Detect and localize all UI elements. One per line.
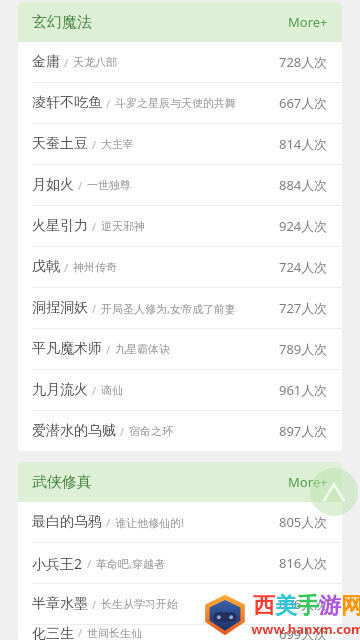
button[interactable]: 月如火: [18, 165, 342, 205]
staticText: 884人次: [279, 176, 328, 194]
button[interactable]: 火星引力: [18, 206, 342, 246]
staticText: More+: [288, 13, 328, 31]
button[interactable]: 武侠修真: [18, 462, 342, 502]
staticText: 727人次: [279, 299, 328, 317]
button[interactable]: 九月流火: [18, 370, 342, 410]
staticText: 平凡魔术师: [32, 340, 102, 358]
staticText: 九星霸体诀: [115, 342, 170, 356]
button[interactable]: 爱潜水的乌贼: [18, 411, 342, 451]
staticText: 化三生: [32, 625, 74, 640]
staticText: www.hanxm.com: [251, 620, 360, 638]
staticText: 世间长生仙: [87, 626, 142, 640]
staticText: 728人次: [279, 53, 328, 71]
staticText: 月如火: [32, 176, 74, 194]
staticText: 手: [297, 592, 319, 620]
staticText: 一世独尊: [87, 178, 131, 192]
staticText: 大主宰: [101, 137, 134, 151]
staticText: /: [92, 383, 97, 398]
staticText: /: [64, 55, 69, 70]
staticText: 火星引力: [32, 217, 88, 235]
button[interactable]: 洞捏洞妖: [18, 288, 342, 328]
button[interactable]: 天蚕土豆: [18, 124, 342, 164]
staticText: 961人次: [279, 381, 328, 399]
staticText: 小兵王2: [32, 554, 83, 573]
button[interactable]: 最白的乌鸦: [18, 502, 342, 542]
staticText: /: [87, 556, 92, 571]
staticText: /: [120, 424, 125, 439]
staticText: 谁让他修仙的!: [115, 515, 184, 530]
staticText: 805人次: [279, 513, 328, 531]
staticText: /: [92, 597, 97, 612]
button[interactable]: 平凡魔术师: [18, 329, 342, 369]
staticText: 最白的乌鸦: [32, 513, 102, 531]
staticText: 897人次: [279, 422, 328, 440]
staticText: 开局圣人修为,女帝成了前妻: [101, 301, 236, 316]
staticText: 816人次: [279, 554, 328, 572]
staticText: 814人次: [279, 135, 328, 153]
staticText: 789人次: [279, 340, 328, 358]
staticText: 836人次: [279, 595, 328, 613]
staticText: /: [64, 260, 69, 275]
staticText: 667人次: [279, 94, 328, 112]
staticText: 网: [341, 592, 360, 620]
staticText: /: [106, 515, 111, 530]
staticText: /: [106, 96, 111, 111]
staticText: /: [92, 219, 97, 234]
staticText: 谪仙: [101, 383, 123, 397]
staticText: /: [78, 178, 83, 193]
button[interactable]: 戊戟: [18, 247, 342, 287]
staticText: 武侠修真: [32, 473, 92, 492]
staticText: 半章水墨: [32, 595, 88, 613]
staticText: 美: [275, 592, 297, 620]
staticText: 游: [319, 592, 341, 620]
button[interactable]: 凌轩不吃鱼: [18, 83, 342, 123]
staticText: /: [78, 625, 83, 640]
button[interactable]: Scroll to top: [310, 468, 358, 516]
staticText: 金庸: [32, 53, 60, 71]
staticText: 天蚕土豆: [32, 135, 88, 153]
staticText: 洞捏洞妖: [32, 299, 88, 317]
staticText: /: [106, 342, 111, 357]
button[interactable]: 化三生: [18, 625, 342, 640]
staticText: More+: [288, 473, 328, 491]
button[interactable]: 小兵王2: [18, 543, 342, 583]
staticText: 斗罗之星辰与天使的共舞: [115, 96, 236, 110]
staticText: /: [92, 137, 97, 152]
button[interactable]: 金庸: [18, 42, 342, 82]
staticText: 724人次: [279, 258, 328, 276]
staticText: 924人次: [279, 217, 328, 235]
button[interactable]: 玄幻魔法: [18, 2, 342, 42]
staticText: 西: [253, 592, 275, 620]
staticText: 宿命之环: [129, 424, 173, 438]
staticText: 长生从学习开始: [101, 597, 178, 611]
staticText: 革命吧,穿越者: [96, 556, 165, 571]
staticText: 爱潜水的乌贼: [32, 422, 116, 440]
staticText: 戊戟: [32, 258, 60, 276]
staticText: 九月流火: [32, 381, 88, 399]
button[interactable]: 半章水墨: [18, 584, 342, 624]
staticText: 699人次: [279, 625, 328, 640]
staticText: 玄幻魔法: [32, 13, 92, 32]
staticText: 天龙八部: [73, 55, 117, 69]
staticText: 神州传奇: [73, 260, 117, 274]
staticText: 凌轩不吃鱼: [32, 94, 102, 112]
staticText: 逆天邪神: [101, 219, 145, 233]
staticText: /: [92, 301, 97, 316]
